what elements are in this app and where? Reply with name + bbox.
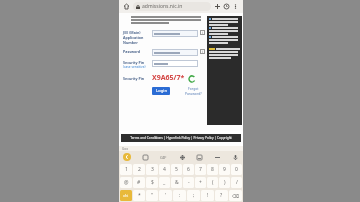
button[interactable]: Translate <box>195 153 203 161</box>
button[interactable]: Tabs <box>222 2 231 11</box>
button[interactable]: More <box>213 153 222 162</box>
staticText: $ <box>151 179 154 186</box>
staticText: ) <box>224 179 226 186</box>
button[interactable]: 9 <box>219 164 230 175</box>
staticText: 4 <box>163 166 166 173</box>
button[interactable]: Voice input <box>231 153 239 161</box>
staticText: Goo <box>122 147 129 151</box>
button[interactable]: @ <box>120 177 132 188</box>
button[interactable]: Forgot <box>185 86 202 96</box>
staticText: @ <box>124 179 129 186</box>
staticText: GIF <box>160 155 167 160</box>
button[interactable]: ) <box>219 177 230 188</box>
button[interactable]: Refresh security pin <box>188 75 195 82</box>
staticText: Terms and Conditions | Hyperlink Policy … <box>130 136 232 140</box>
staticText: (case sensitive) <box>123 65 146 69</box>
button[interactable]: ' <box>159 190 172 201</box>
button[interactable]: + <box>195 177 206 188</box>
button[interactable]: " <box>146 190 158 201</box>
button[interactable] <box>152 30 198 37</box>
button[interactable]: 1 <box>120 164 132 175</box>
staticText: 1 <box>125 166 128 173</box>
button[interactable]: _ <box>159 177 170 188</box>
button[interactable]: ! <box>201 190 214 201</box>
staticText: / <box>236 179 238 186</box>
button[interactable]: $ <box>146 177 158 188</box>
button[interactable]: admissions.nic.in <box>133 2 211 11</box>
button[interactable]: Home <box>122 2 131 11</box>
staticText: Login <box>156 88 167 94</box>
staticText: 6 <box>187 166 190 173</box>
button[interactable]: Help <box>200 49 205 54</box>
staticText: _ <box>163 179 166 186</box>
staticText: 3 <box>151 166 154 173</box>
staticText: ( <box>212 179 214 186</box>
button[interactable]: Stickers <box>141 153 149 161</box>
button[interactable]: ; <box>187 190 200 201</box>
staticText: & <box>175 179 179 186</box>
staticText: =\< <box>123 193 129 198</box>
staticText: i <box>202 30 203 35</box>
staticText: X9A65/7* <box>152 73 185 83</box>
staticText: ; <box>193 192 195 199</box>
button[interactable]: GIF <box>158 152 168 162</box>
button[interactable] <box>152 60 198 67</box>
button[interactable]: 2 <box>133 164 145 175</box>
button[interactable]: ? <box>215 190 228 201</box>
staticText: 9 <box>223 166 226 173</box>
staticText: Password? <box>185 91 202 96</box>
button[interactable]: 5 <box>171 164 182 175</box>
staticText: - <box>188 179 190 186</box>
button[interactable]: # <box>133 177 145 188</box>
staticText: # <box>137 179 141 186</box>
staticText: Forgot <box>188 86 199 91</box>
button[interactable]: - <box>183 177 194 188</box>
staticText: Password <box>123 49 141 54</box>
button[interactable] <box>152 49 198 56</box>
button[interactable]: Login <box>152 87 170 95</box>
staticText: 5 <box>175 166 178 173</box>
button[interactable]: & <box>171 177 182 188</box>
staticText: Security Pin <box>123 76 145 81</box>
button[interactable]: Expand toolbar <box>123 153 131 161</box>
button[interactable]: 4 <box>159 164 170 175</box>
button[interactable]: 0 <box>231 164 242 175</box>
button[interactable]: * <box>133 190 145 201</box>
button[interactable]: Help <box>200 30 205 35</box>
staticText: Security Pin <box>123 60 145 65</box>
staticText: + <box>199 179 202 186</box>
staticText: * <box>138 192 141 199</box>
button[interactable]: 3 <box>146 164 158 175</box>
staticText: admissions.nic.in <box>142 3 183 10</box>
staticText: : <box>179 192 181 199</box>
button[interactable]: New tab <box>213 2 222 11</box>
staticText: ⌫ <box>232 193 240 199</box>
button[interactable]: More options <box>231 2 240 11</box>
button[interactable]: 7 <box>195 164 206 175</box>
button[interactable]: =\< <box>120 190 132 201</box>
staticText: " <box>151 192 154 199</box>
button[interactable]: ⌫ <box>229 190 242 201</box>
staticText: 2 <box>138 166 141 173</box>
button[interactable]: : <box>173 190 186 201</box>
staticText: ' <box>165 192 167 199</box>
button[interactable]: / <box>231 177 242 188</box>
staticText: 0 <box>235 166 238 173</box>
button[interactable]: 8 <box>207 164 218 175</box>
staticText: JEE (Main) Application Number <box>123 30 149 45</box>
staticText: i <box>202 49 203 54</box>
staticText: ? <box>220 192 223 199</box>
staticText: ! <box>207 192 209 199</box>
button[interactable]: ( <box>207 177 218 188</box>
staticText: 7 <box>199 166 202 173</box>
staticText: 8 <box>211 166 214 173</box>
button[interactable]: 6 <box>183 164 194 175</box>
button[interactable]: Settings <box>178 153 186 161</box>
